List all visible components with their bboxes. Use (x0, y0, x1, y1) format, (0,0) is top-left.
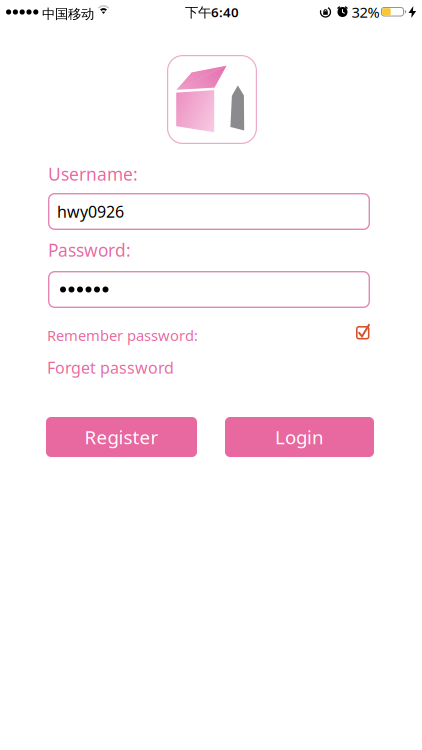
button[interactable]: Forget password (47, 357, 174, 378)
staticText: Remember password: (47, 325, 198, 345)
staticText: Register (84, 425, 158, 449)
button[interactable]: Register (46, 417, 197, 457)
staticText: Username: (48, 162, 138, 185)
staticText: 32% (351, 2, 379, 22)
button[interactable]: Password (48, 271, 370, 308)
button[interactable]: Login (225, 417, 374, 457)
staticText: 下午6:40 (185, 3, 239, 21)
staticText: 中国移动 (42, 6, 94, 22)
button[interactable]: Remember password (355, 323, 373, 341)
staticText: Password: (48, 238, 131, 261)
staticText: Forget password (47, 357, 174, 378)
staticText: Login (275, 425, 324, 449)
button[interactable]: hwy0926 (48, 193, 370, 230)
staticText: hwy0926 (57, 201, 124, 222)
